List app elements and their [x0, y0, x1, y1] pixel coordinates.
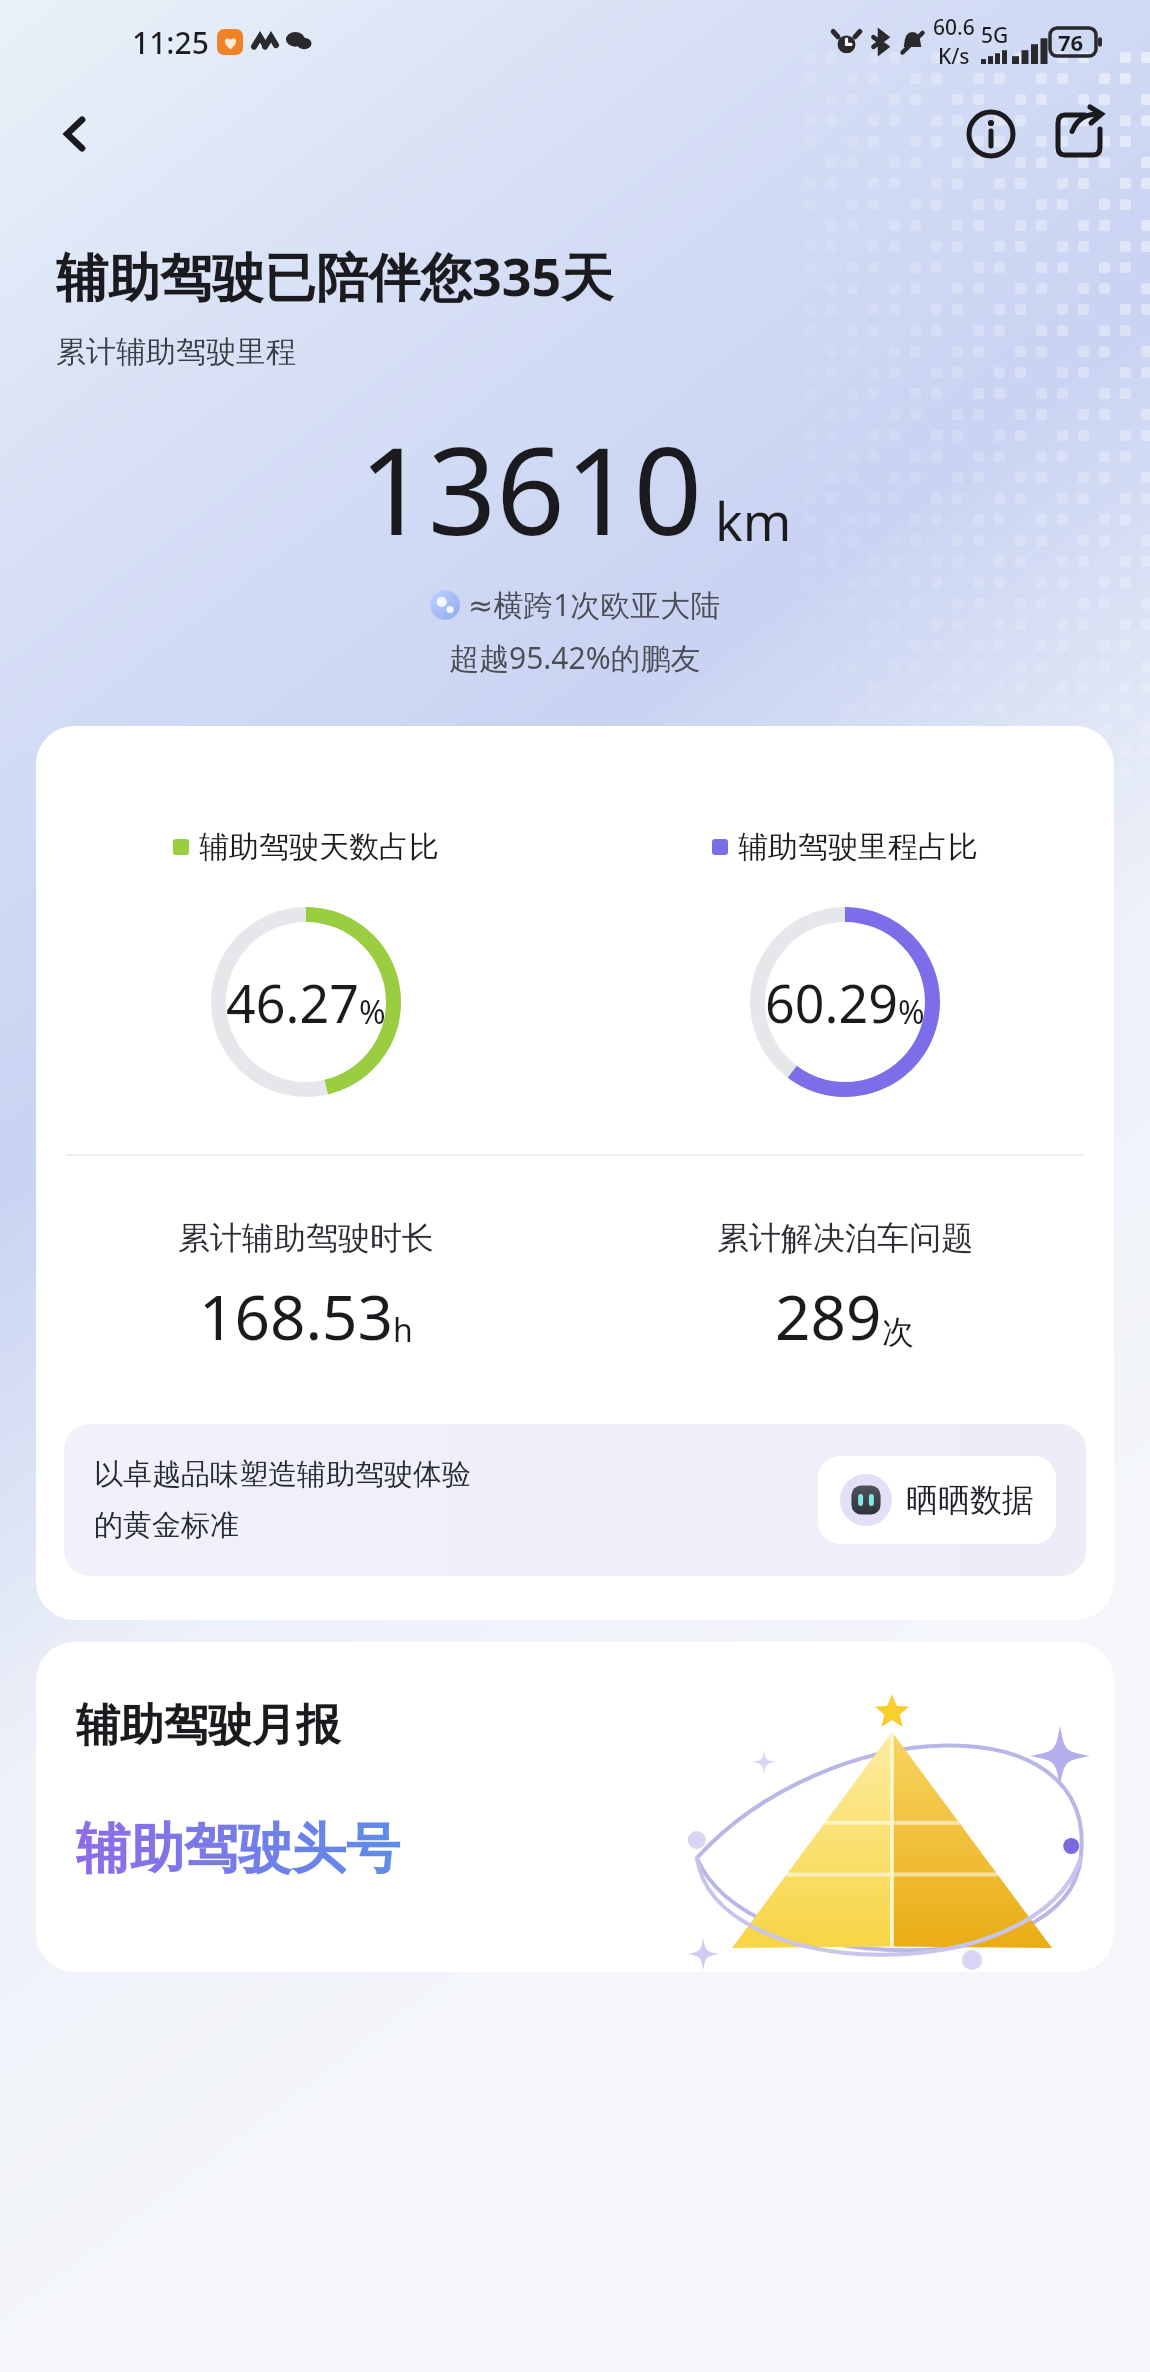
staticText: 289 [775, 1274, 882, 1358]
staticText: % [359, 990, 386, 1034]
button[interactable]: Share [1044, 99, 1114, 169]
staticText: 13610 [359, 407, 703, 570]
staticText: 超越95.42%的鹏友 [449, 637, 701, 678]
button[interactable]: Back [44, 102, 108, 166]
button[interactable]: Info [956, 99, 1026, 169]
staticText: 5G [981, 21, 1009, 50]
staticText: 168.53 [199, 1274, 393, 1358]
staticText: 76 [1058, 27, 1084, 57]
staticText: 以卓越品味塑造辅助驾驶体验 [94, 1456, 471, 1493]
staticText: 累计辅助驾驶时长 [178, 1218, 434, 1258]
staticText: 次 [882, 1312, 914, 1352]
staticText: 辅助驾驶头号 [76, 1815, 400, 1883]
staticText: 辅助驾驶里程占比 [738, 828, 978, 866]
staticText: km [715, 485, 792, 556]
staticText: % [898, 990, 925, 1034]
button[interactable]: 辅助驾驶天数占比 [36, 726, 1114, 1620]
staticText: h [393, 1308, 413, 1352]
staticText: ≈横跨1次欧亚大陆 [468, 584, 721, 625]
staticText: 辅助驾驶天数占比 [199, 828, 439, 866]
staticText: 的黄金标准 [94, 1507, 239, 1544]
staticText: 辅助驾驶月报 [76, 1698, 340, 1753]
staticText: 晒晒数据 [906, 1480, 1034, 1520]
button[interactable]: 辅助驾驶月报 [36, 1642, 1114, 1972]
staticText: 11:25 [132, 22, 209, 63]
staticText: K/s [938, 42, 970, 71]
staticText: 46.27 [226, 967, 359, 1038]
staticText: 60.29 [765, 967, 898, 1038]
staticText: 累计辅助驾驶里程 [56, 333, 296, 371]
staticText: 60.6 [933, 13, 975, 42]
button[interactable]: 晒晒数据 [818, 1456, 1056, 1544]
staticText: 累计解决泊车问题 [717, 1218, 973, 1258]
staticText: 辅助驾驶已陪伴您335天 [56, 240, 614, 311]
